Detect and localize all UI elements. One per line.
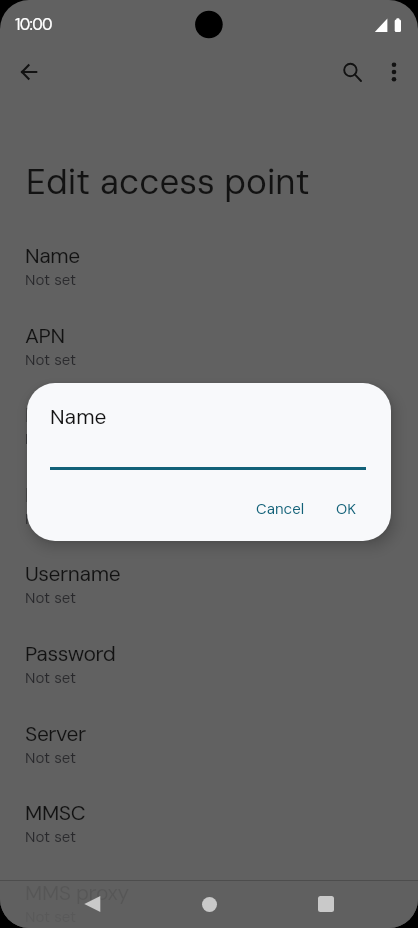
button[interactable]: Navigate up	[5, 49, 53, 95]
staticText: Name	[50, 403, 107, 430]
button[interactable]: Name	[0, 242, 418, 322]
staticText: MMSC	[25, 799, 86, 826]
button[interactable]: Back	[68, 880, 116, 928]
staticText: Proxy	[25, 401, 78, 428]
button[interactable]: Server	[0, 720, 418, 800]
staticText: Not set	[25, 748, 77, 768]
staticText: Name	[25, 242, 80, 269]
button[interactable]: Port	[0, 481, 418, 561]
button[interactable]: OK	[324, 492, 369, 526]
staticText: Not set	[25, 350, 77, 370]
staticText: Username	[25, 560, 121, 587]
staticText: Not set	[25, 270, 77, 290]
staticText: Edit access point	[26, 159, 310, 205]
button[interactable]: Proxy	[0, 401, 418, 481]
button[interactable]: Search	[328, 49, 376, 95]
staticText: 10:00	[15, 14, 52, 35]
button[interactable]: APN	[0, 322, 418, 402]
staticText: Not set	[25, 668, 77, 688]
staticText: Not set	[25, 827, 77, 847]
button[interactable]: MMSC	[0, 799, 418, 879]
staticText: Server	[25, 720, 86, 747]
staticText: Not set	[25, 509, 77, 529]
button[interactable]: MMS proxy	[0, 879, 418, 928]
staticText: APN	[25, 322, 65, 349]
staticText: OK	[336, 499, 357, 519]
button[interactable]: Recent apps	[302, 880, 350, 928]
button[interactable]: Home	[185, 880, 233, 928]
staticText: Not set	[25, 588, 77, 608]
staticText: MMS proxy	[25, 879, 129, 906]
button[interactable]: Cancel	[244, 492, 317, 526]
staticText: Not set	[25, 429, 77, 449]
button[interactable]: More options	[370, 49, 418, 95]
staticText: Port	[25, 481, 65, 508]
button[interactable]: Username	[0, 560, 418, 640]
staticText: Cancel	[256, 499, 305, 519]
staticText: Password	[25, 640, 116, 667]
button[interactable]: Password	[0, 640, 418, 720]
